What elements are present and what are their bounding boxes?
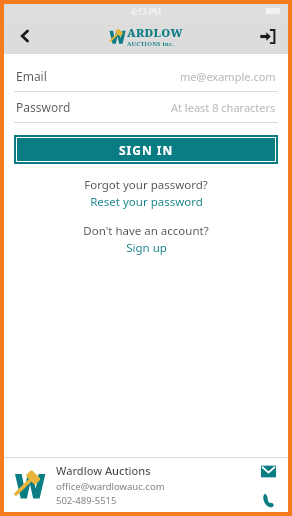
button[interactable]: Password (4, 92, 288, 123)
staticText: 502-489-5515 (56, 494, 117, 507)
staticText: Forgot your password? (4, 177, 288, 193)
staticText: At least 8 characters (171, 100, 276, 115)
button[interactable]: Email us (258, 461, 278, 481)
button[interactable]: Back (10, 21, 40, 51)
staticText: Wardlow Auctions (56, 463, 151, 478)
staticText: me@example.com (180, 69, 276, 84)
staticText: AUCTIONS inc. (127, 40, 175, 48)
button[interactable]: Sign up (126, 240, 167, 256)
staticText: Don't have an account? (4, 223, 288, 239)
button[interactable]: SIGN IN (16, 137, 276, 162)
button[interactable]: Call us (258, 490, 278, 510)
button[interactable]: Reset your password (90, 194, 203, 210)
staticText: 4:13 PM (131, 6, 162, 17)
button[interactable]: Email (4, 61, 288, 92)
button[interactable]: Sign in (252, 21, 282, 51)
staticText: Email (16, 68, 47, 84)
staticText: ARDLOW (127, 25, 183, 40)
staticText: office@wardlowauc.com (56, 480, 165, 493)
staticText: SIGN IN (119, 142, 174, 158)
staticText: Password (16, 99, 71, 115)
